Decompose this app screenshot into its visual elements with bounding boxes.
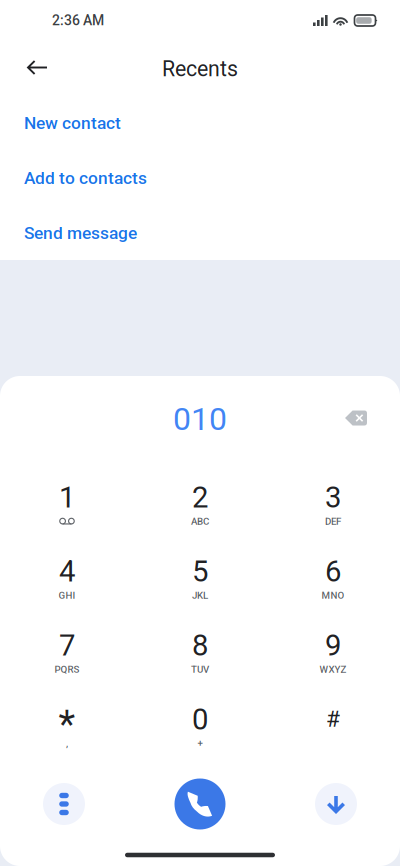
staticText: GHI bbox=[58, 590, 75, 601]
staticText: PQRS bbox=[54, 664, 79, 675]
button[interactable]: Hide dialpad bbox=[315, 783, 357, 825]
staticText: # bbox=[326, 706, 340, 732]
staticText: 3 bbox=[325, 480, 341, 515]
button[interactable]: New contact bbox=[0, 95, 400, 150]
button[interactable]: 4 bbox=[0, 544, 133, 618]
button[interactable]: 7 bbox=[0, 618, 133, 692]
button[interactable]: Call bbox=[174, 778, 225, 829]
staticText: 1 bbox=[59, 480, 75, 515]
staticText: + bbox=[197, 738, 202, 749]
button[interactable]: 0 bbox=[133, 692, 266, 766]
staticText: 8 bbox=[192, 628, 208, 663]
staticText: , bbox=[66, 738, 68, 749]
staticText: 010 bbox=[173, 400, 227, 438]
button[interactable]: 1 bbox=[0, 470, 133, 544]
staticText: 2:36 AM bbox=[52, 12, 104, 29]
button[interactable]: Add to contacts bbox=[0, 150, 400, 205]
staticText: MNO bbox=[321, 590, 344, 601]
staticText: 2 bbox=[192, 480, 208, 515]
button[interactable]: 8 bbox=[133, 618, 266, 692]
staticText: DEF bbox=[325, 516, 341, 527]
button[interactable]: Delete bbox=[332, 399, 380, 446]
staticText: New contact bbox=[24, 113, 121, 133]
staticText: 7 bbox=[59, 628, 75, 663]
button[interactable]: 2 bbox=[133, 470, 266, 544]
staticText: 4 bbox=[59, 554, 75, 589]
staticText: 9 bbox=[325, 628, 341, 663]
staticText: Add to contacts bbox=[24, 168, 147, 188]
button[interactable]: # bbox=[266, 692, 399, 766]
staticText: * bbox=[58, 702, 75, 747]
staticText: 5 bbox=[192, 554, 208, 589]
button[interactable]: 6 bbox=[266, 544, 399, 618]
button[interactable]: 3 bbox=[266, 470, 399, 544]
staticText: ABC bbox=[191, 516, 209, 527]
staticText: Send message bbox=[24, 223, 137, 243]
button[interactable]: 9 bbox=[266, 618, 399, 692]
button[interactable]: Send message bbox=[0, 205, 400, 260]
staticText: TUV bbox=[191, 664, 209, 675]
staticText: Recents bbox=[162, 56, 238, 81]
button[interactable]: Back bbox=[12, 41, 62, 91]
staticText: WXYZ bbox=[319, 664, 346, 675]
button[interactable]: 5 bbox=[133, 544, 266, 618]
staticText: 6 bbox=[325, 554, 341, 589]
staticText: 0 bbox=[192, 702, 208, 737]
staticText: JKL bbox=[192, 590, 208, 601]
button[interactable]: More options bbox=[43, 783, 85, 825]
button[interactable]: * bbox=[0, 692, 133, 766]
